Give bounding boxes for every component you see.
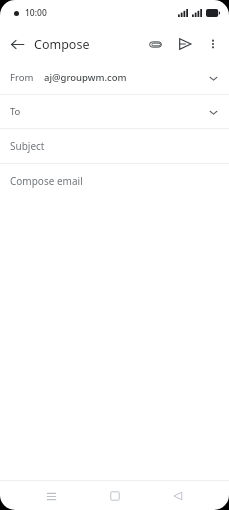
staticText: aj@groupwm.com bbox=[44, 71, 127, 84]
button[interactable]: Recent apps bbox=[38, 483, 64, 509]
button[interactable]: Home bbox=[102, 483, 128, 509]
button[interactable]: Back bbox=[0, 27, 34, 61]
button[interactable]: Subject bbox=[0, 129, 229, 163]
staticText: To bbox=[10, 105, 21, 118]
button[interactable]: To bbox=[0, 95, 229, 128]
staticText: From bbox=[10, 71, 34, 84]
button[interactable]: Compose email bbox=[0, 164, 229, 198]
button[interactable]: Send bbox=[170, 29, 200, 59]
staticText: Subject bbox=[10, 139, 45, 153]
staticText: Compose bbox=[34, 36, 90, 53]
staticText: Compose email bbox=[10, 174, 83, 188]
button[interactable]: Attach file bbox=[140, 29, 170, 59]
button[interactable]: Back bbox=[165, 483, 191, 509]
button[interactable]: More options bbox=[200, 31, 226, 57]
staticText: 10:00 bbox=[25, 7, 47, 19]
button[interactable]: From bbox=[0, 61, 229, 94]
